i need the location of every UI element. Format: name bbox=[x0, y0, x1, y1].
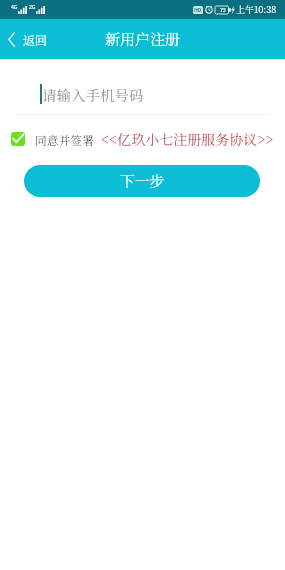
button[interactable]: Agree to terms checkbox bbox=[11, 132, 25, 146]
staticText: HD bbox=[194, 7, 202, 14]
button[interactable]: 下一步 bbox=[24, 165, 260, 197]
button[interactable]: 返回 bbox=[0, 23, 56, 56]
staticText: 2G bbox=[29, 4, 36, 11]
button[interactable]: <<亿玖小七注册服务协议>> bbox=[101, 129, 274, 149]
staticText: 请输入手机号码 bbox=[42, 84, 144, 105]
staticText: 73 bbox=[220, 7, 226, 14]
staticText: 下一步 bbox=[119, 170, 165, 192]
staticText: 同意并签署 bbox=[35, 131, 94, 148]
staticText: 4G bbox=[11, 4, 18, 11]
staticText: 上午10:38 bbox=[236, 3, 277, 16]
staticText: 返回 bbox=[23, 31, 48, 48]
staticText: 新用户注册 bbox=[105, 28, 181, 50]
button[interactable]: 请输入手机号码 bbox=[15, 74, 270, 114]
